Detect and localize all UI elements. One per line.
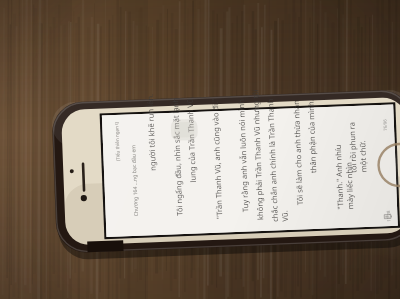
button[interactable]: Photo of a phone on a wooden table xyxy=(0,0,400,299)
